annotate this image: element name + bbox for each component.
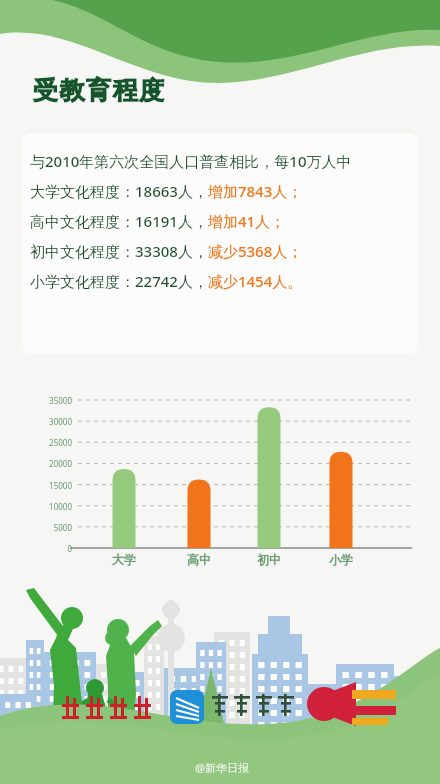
staticText: @新华日报 (195, 760, 249, 775)
staticText: 5000 (30, 522, 72, 533)
button[interactable]: 与2010年第六次全国人口普查相比，每10万人中 (22, 133, 418, 354)
staticText: 高中文化程度：16191人，增加41人； (30, 211, 286, 231)
staticText: 高中 (181, 552, 217, 567)
staticText: 10000 (30, 501, 72, 512)
staticText: 20000 (30, 458, 72, 469)
staticText: 35000 (30, 395, 72, 406)
staticText: 初中文化程度：33308人，减少5368人； (30, 241, 303, 261)
staticText: 0 (30, 543, 72, 554)
staticText: 小学文化程度：22742人，减少1454人。 (30, 271, 303, 291)
staticText: 25000 (30, 437, 72, 448)
staticText: 大学 (106, 552, 142, 567)
staticText: 小学 (323, 552, 359, 567)
staticText: 15000 (30, 480, 72, 491)
staticText: 30000 (30, 416, 72, 427)
staticText: 受教育程度 (33, 75, 166, 106)
staticText: 大学文化程度：18663人，增加7843人； (30, 181, 303, 201)
staticText: 初中 (251, 552, 287, 567)
staticText: 与2010年第六次全国人口普查相比，每10万人中 (30, 151, 352, 171)
